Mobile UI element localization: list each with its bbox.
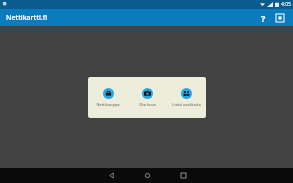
staticText: Ota kuva [139, 102, 156, 107]
button[interactable]: Back [93, 168, 129, 183]
button[interactable]: Help [256, 11, 270, 25]
button[interactable]: Lisää osakkaita [167, 77, 205, 118]
staticText: ? [261, 12, 266, 24]
staticText: Nettikartti.fi [6, 13, 48, 23]
staticText: Nettikauppa [96, 102, 120, 107]
button[interactable]: Nettikauppa [89, 77, 127, 118]
button[interactable]: Fullscreen [273, 11, 287, 25]
button[interactable]: Home [129, 168, 165, 183]
button[interactable]: Recent apps [165, 168, 201, 183]
staticText: 4:05 [281, 1, 291, 8]
staticText: Lisää osakkaita [172, 102, 201, 107]
button[interactable]: Ota kuva [128, 77, 166, 118]
